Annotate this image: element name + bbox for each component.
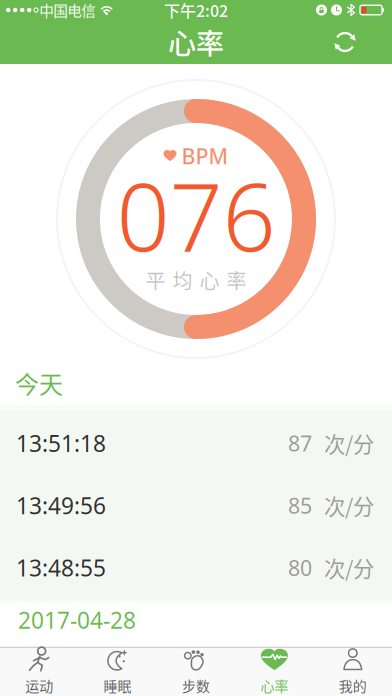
- staticText: 心率: [168, 22, 224, 62]
- staticText: 13:51:18: [16, 428, 106, 458]
- staticText: 步数: [182, 675, 210, 696]
- staticText: 今天: [15, 366, 63, 400]
- button[interactable]: 刷新: [323, 20, 367, 64]
- button[interactable]: 步数: [157, 648, 235, 696]
- staticText: 中国电信: [39, 0, 96, 21]
- staticText: 次/分: [324, 552, 374, 583]
- button[interactable]: 我的: [314, 648, 392, 696]
- staticText: 我的: [339, 675, 367, 696]
- staticText: 87: [288, 429, 312, 457]
- staticText: BPM: [181, 142, 228, 170]
- staticText: 下午2:02: [164, 0, 228, 22]
- staticText: 2017-04-28: [18, 605, 136, 635]
- staticText: 85: [288, 491, 312, 520]
- staticText: 次/分: [324, 428, 374, 459]
- button[interactable]: 睡眠: [78, 648, 157, 696]
- staticText: 13:49:56: [16, 490, 106, 520]
- button[interactable]: 运动: [0, 648, 78, 696]
- staticText: 次/分: [324, 490, 374, 521]
- staticText: 睡眠: [104, 675, 132, 696]
- staticText: 平均心率: [145, 265, 246, 294]
- button[interactable]: 心率: [235, 648, 314, 696]
- staticText: 运动: [25, 675, 53, 696]
- staticText: 心率: [260, 675, 288, 696]
- staticText: 13:48:55: [16, 553, 106, 583]
- staticText: 076: [116, 153, 275, 277]
- staticText: 80: [288, 554, 312, 582]
